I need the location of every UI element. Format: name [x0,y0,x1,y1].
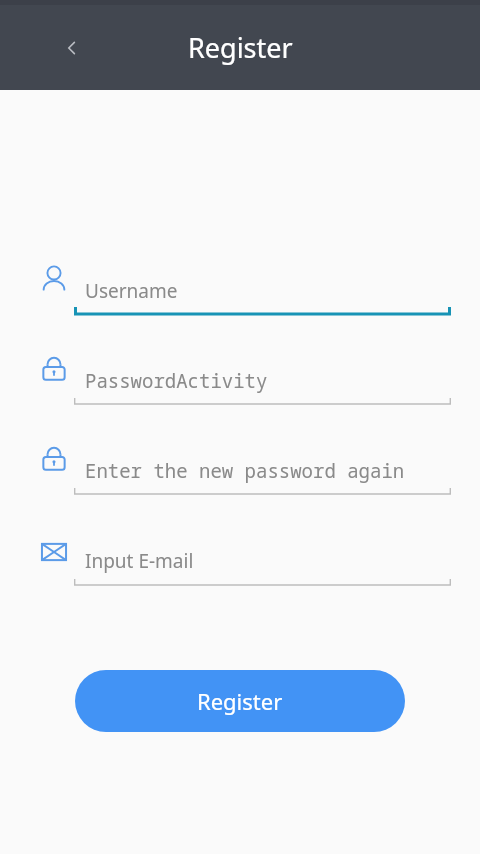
staticText: Input E-mail [85,548,462,574]
button[interactable]: Username [74,264,451,312]
button[interactable]: PasswordActivity [74,354,451,402]
other: Confirm password [38,443,70,475]
button[interactable]: Enter the new password again [74,444,451,492]
staticText: Username [85,278,462,304]
button[interactable]: Back [50,26,94,70]
other: Username [38,263,70,295]
other: E-mail [38,536,70,568]
staticText: Enter the new password again [85,458,462,484]
staticText: Register [188,29,293,66]
button[interactable]: Register [75,670,405,732]
staticText: PasswordActivity [85,368,462,394]
button[interactable]: Input E-mail [74,534,451,582]
other: Password [38,353,70,385]
staticText: Register [197,686,283,716]
